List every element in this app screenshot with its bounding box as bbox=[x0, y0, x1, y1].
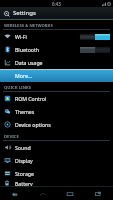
staticText: Themes bbox=[15, 108, 110, 115]
button[interactable]: Sound bbox=[0, 141, 113, 154]
button[interactable]: Battery bbox=[0, 180, 113, 186]
staticText: DEVICE bbox=[4, 134, 19, 140]
staticText: QUICK LINKS bbox=[4, 85, 32, 91]
button[interactable]: Recent apps bbox=[58, 187, 82, 200]
staticText: Storage bbox=[15, 170, 110, 177]
staticText: Data usage bbox=[15, 59, 110, 66]
button[interactable]: ROM Control bbox=[0, 92, 113, 105]
button[interactable]: Storage bbox=[0, 167, 113, 180]
button[interactable]: Toggle on bbox=[80, 34, 110, 40]
button[interactable]: Data usage bbox=[0, 56, 113, 69]
button[interactable]: Device options bbox=[0, 118, 113, 131]
button[interactable]: Home bbox=[31, 187, 55, 200]
staticText: Device options bbox=[15, 121, 110, 128]
staticText: 6:43 bbox=[52, 1, 61, 7]
button[interactable]: Toggle off bbox=[80, 47, 110, 53]
staticText: More... bbox=[15, 72, 32, 79]
staticText: ROM Control bbox=[15, 95, 110, 102]
staticText: WIRELESS & NETWORKS bbox=[4, 23, 53, 29]
staticText: Battery bbox=[15, 180, 110, 186]
staticText: Wi-Fi bbox=[15, 33, 80, 40]
staticText: Sound bbox=[15, 144, 110, 151]
staticText: Bluetooth bbox=[15, 46, 80, 53]
button[interactable]: Back bbox=[3, 187, 27, 200]
button[interactable]: Wi-Fi bbox=[0, 30, 113, 43]
staticText: Display bbox=[15, 157, 110, 164]
button[interactable]: Themes bbox=[0, 105, 113, 118]
button[interactable]: Menu bbox=[86, 187, 110, 200]
button[interactable]: Settings bbox=[0, 7, 113, 19]
staticText: Settings bbox=[13, 9, 36, 17]
button[interactable]: Bluetooth bbox=[0, 43, 113, 56]
button[interactable]: More... bbox=[0, 69, 113, 82]
button[interactable]: Display bbox=[0, 154, 113, 167]
